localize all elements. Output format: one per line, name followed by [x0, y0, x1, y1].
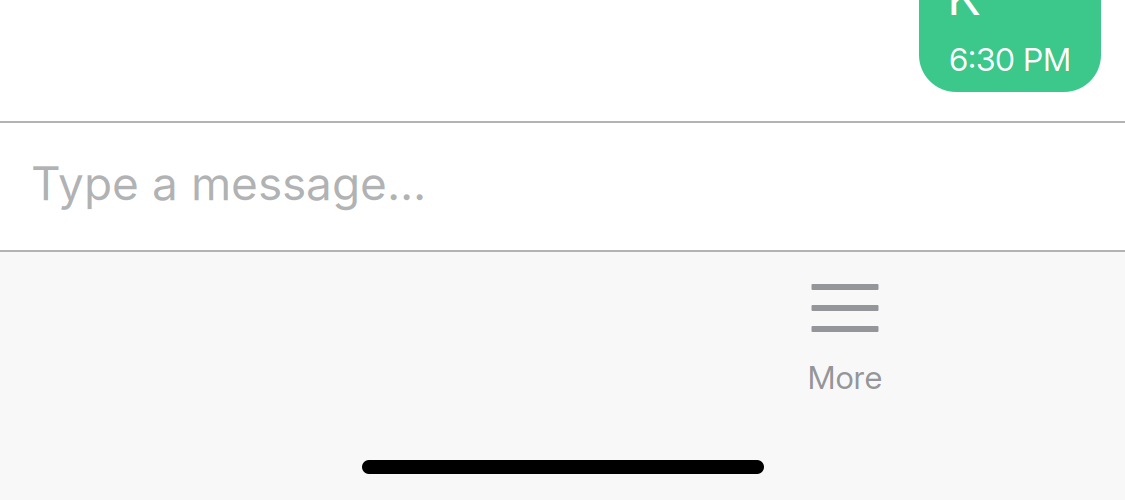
staticText: Type a message...: [31, 156, 426, 211]
button[interactable]: More: [770, 252, 920, 417]
button[interactable]: Type a message...: [0, 123, 1125, 250]
staticText: 6:30 PM: [949, 40, 1071, 79]
staticText: K: [947, 0, 981, 27]
staticText: More: [807, 358, 882, 397]
